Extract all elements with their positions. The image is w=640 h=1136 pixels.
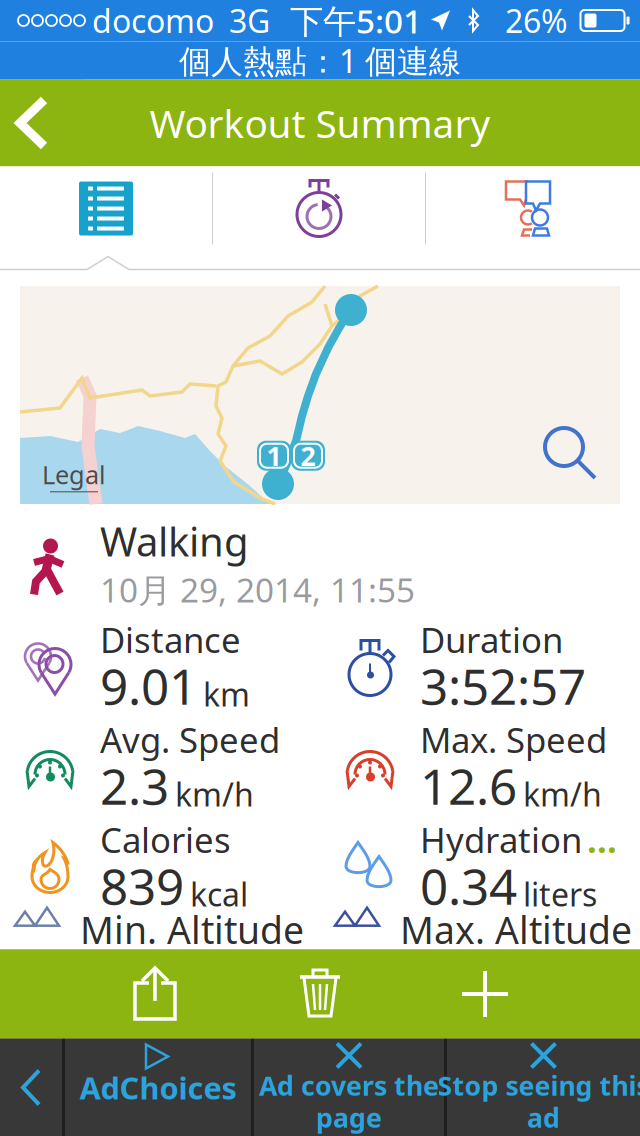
button[interactable]: Stop seeing this	[447, 1038, 640, 1136]
staticText: 下午5:01	[290, 0, 422, 43]
staticText: 10月 29, 2014, 11:55	[100, 567, 415, 612]
staticText: docomo	[92, 0, 214, 42]
staticText: Ad covers the	[259, 1068, 439, 1103]
staticText: kcal	[190, 873, 248, 915]
staticText: page	[316, 1100, 382, 1135]
staticText: Stop seeing this	[437, 1068, 640, 1103]
staticText: liters	[523, 873, 597, 915]
staticText: km	[203, 673, 250, 715]
button[interactable]: Add	[434, 949, 536, 1038]
staticText: Walking	[100, 514, 249, 567]
staticText: ad	[527, 1100, 560, 1135]
staticText: 1	[266, 438, 281, 473]
staticText: Workout Summary	[149, 97, 490, 149]
staticText: ...	[587, 816, 617, 862]
staticText: Hydration	[420, 816, 582, 862]
staticText: AdChoices	[79, 1067, 236, 1108]
staticText: 839	[100, 853, 184, 918]
staticText: 2.3	[100, 753, 169, 818]
button[interactable]: AdChoices	[65, 1038, 251, 1136]
staticText: Legal	[42, 458, 106, 491]
staticText: Avg. Speed	[100, 716, 280, 762]
staticText: Duration	[420, 616, 563, 662]
staticText: 12.6	[420, 753, 517, 818]
staticText: km/h	[175, 773, 254, 815]
button[interactable]: Back	[0, 1038, 62, 1136]
button[interactable]: Back	[0, 79, 86, 166]
button[interactable]: Delete	[268, 949, 372, 1038]
staticText: 3:52:57	[420, 653, 586, 718]
button[interactable]: Ad covers the	[254, 1038, 444, 1136]
staticText: Max. Speed	[420, 716, 607, 762]
button[interactable]: Laps	[213, 166, 425, 250]
staticText: 個人熱點：1 個連線	[179, 39, 461, 82]
staticText: Max. Altitude	[400, 905, 632, 954]
staticText: 0.34	[420, 853, 517, 918]
staticText: 3G	[229, 0, 270, 42]
button[interactable]: Social	[426, 166, 640, 250]
staticText: Calories	[100, 816, 231, 862]
button[interactable]: Share	[104, 949, 206, 1038]
staticText: 26%	[505, 0, 568, 42]
staticText: Distance	[100, 616, 241, 662]
staticText: 2	[300, 438, 315, 473]
staticText: 9.01	[100, 653, 197, 718]
staticText: Min. Altitude	[80, 905, 304, 954]
button[interactable]: Summary	[0, 166, 212, 250]
staticText: km/h	[523, 773, 602, 815]
